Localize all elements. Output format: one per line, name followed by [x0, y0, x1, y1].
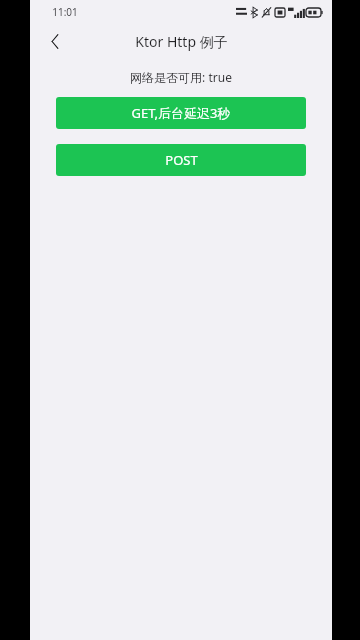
button[interactable]: 返回 [38, 24, 72, 58]
button[interactable]: GET,后台延迟3秒 [56, 97, 306, 129]
staticText: GET,后台延迟3秒 [131, 104, 231, 122]
staticText: 11:01 [52, 5, 78, 19]
button[interactable]: POST [56, 144, 306, 176]
staticText: POST [165, 151, 198, 169]
staticText: Ktor Http 例子 [135, 32, 228, 51]
staticText: 网络是否可用: true [130, 69, 232, 85]
